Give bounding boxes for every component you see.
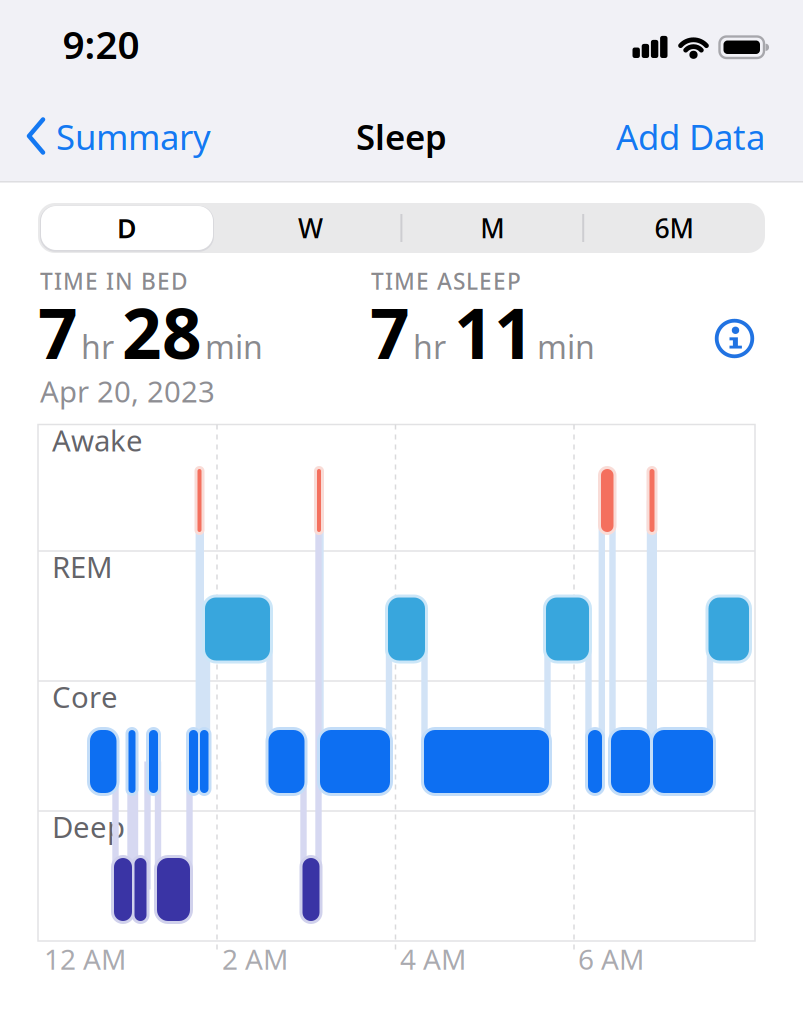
staticText: 9:20 [62,18,139,70]
button[interactable]: D [41,206,213,250]
staticText: 11 [454,286,534,378]
staticText: Core [52,677,118,716]
staticText: 7 [370,286,410,378]
staticText: 28 [122,286,202,378]
staticText: 7 [38,286,78,378]
staticText: REM [52,547,113,586]
staticText: hr [413,325,446,368]
button[interactable]: M [407,205,577,251]
staticText: 4 AM [400,940,466,978]
button[interactable]: Summary [25,113,211,159]
staticText: Apr 20, 2023 [40,371,215,410]
button[interactable]: W [225,205,395,251]
staticText: 2 AM [222,940,288,978]
staticText: 6M [655,210,694,246]
staticText: M [480,210,504,246]
staticText: TIME ASLEEP [371,266,521,296]
staticText: W [298,210,323,246]
staticText: hr [81,325,114,368]
button[interactable]: More Information [714,318,754,358]
staticText: Awake [52,420,143,459]
staticText: min [205,325,263,368]
staticText: 12 AM [44,940,126,978]
staticText: Add Data [616,113,765,159]
staticText: Summary [56,113,211,159]
button[interactable]: 6M [589,205,759,251]
staticText: min [537,325,595,368]
staticText: Deep [52,807,125,846]
staticText: Sleep [356,113,447,159]
staticText: 6 AM [578,940,644,978]
button[interactable]: Add Data [616,113,765,159]
staticText: D [117,210,137,246]
staticText: TIME IN BED [40,266,188,296]
